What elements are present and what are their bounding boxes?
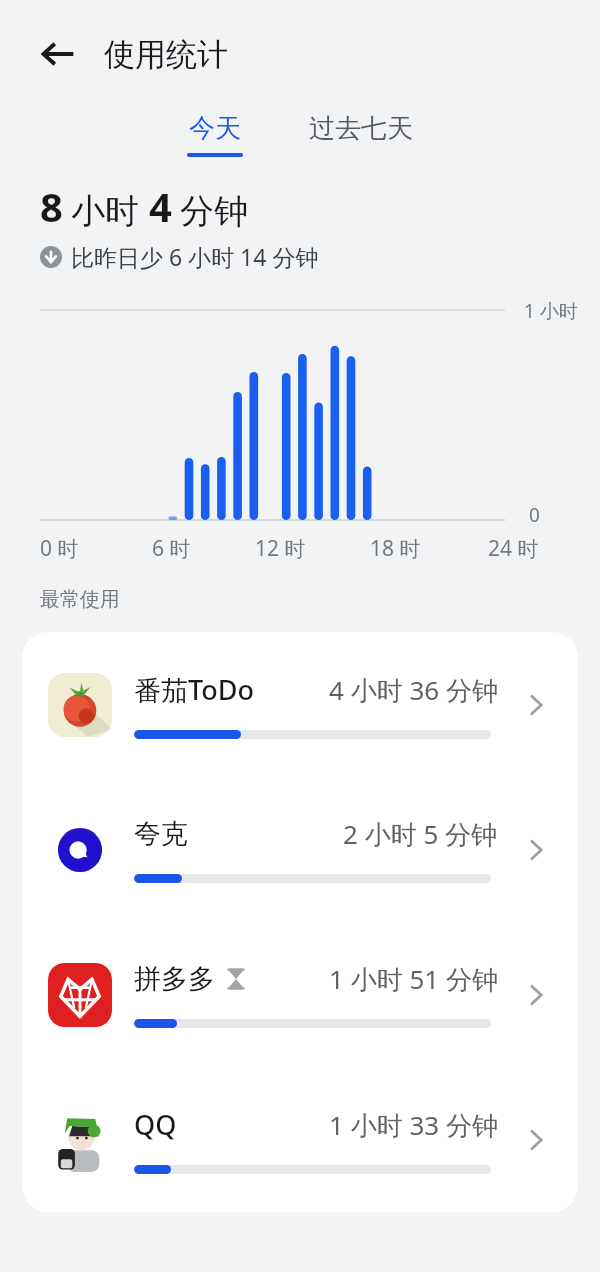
staticText: 拼多多	[134, 962, 215, 996]
other: Details	[514, 683, 558, 727]
staticText: 18 时	[370, 534, 421, 563]
button[interactable]: 过去七天	[301, 108, 421, 149]
staticText: 分钟	[180, 190, 248, 233]
button[interactable]: 番茄ToDo	[22, 632, 578, 777]
staticText: 4 小时 36 分钟	[329, 672, 498, 708]
other: Details	[514, 828, 558, 872]
staticText: 6 时	[152, 534, 191, 563]
other: Details	[514, 1118, 558, 1162]
staticText: 8	[40, 179, 63, 233]
staticText: 0 时	[40, 534, 79, 563]
staticText: 0	[529, 502, 540, 528]
staticText: 今天	[189, 112, 241, 145]
other: Details	[514, 973, 558, 1017]
staticText: 小时	[71, 190, 139, 233]
button[interactable]: Back	[30, 26, 86, 82]
staticText: 番茄ToDo	[134, 671, 255, 708]
button[interactable]: 夸克	[22, 777, 578, 922]
staticText: 12 时	[255, 534, 306, 563]
staticText: 1 小时 33 分钟	[329, 1107, 498, 1143]
staticText: 比昨日少 6 小时 14 分钟	[71, 241, 319, 272]
staticText: QQ	[134, 1106, 177, 1143]
staticText: 1 小时	[524, 298, 578, 324]
button[interactable]: QQ	[22, 1067, 578, 1212]
staticText: 4	[149, 179, 172, 233]
staticText: 最常使用	[40, 587, 120, 612]
button[interactable]: 今天	[179, 108, 251, 161]
button[interactable]: 拼多多	[22, 922, 578, 1067]
staticText: 1 小时 51 分钟	[329, 961, 498, 997]
staticText: 24 时	[488, 534, 539, 563]
staticText: 2 小时 5 分钟	[343, 816, 498, 852]
staticText: 夸克	[134, 817, 188, 851]
staticText: 使用统计	[104, 35, 228, 74]
staticText: 过去七天	[309, 112, 413, 145]
